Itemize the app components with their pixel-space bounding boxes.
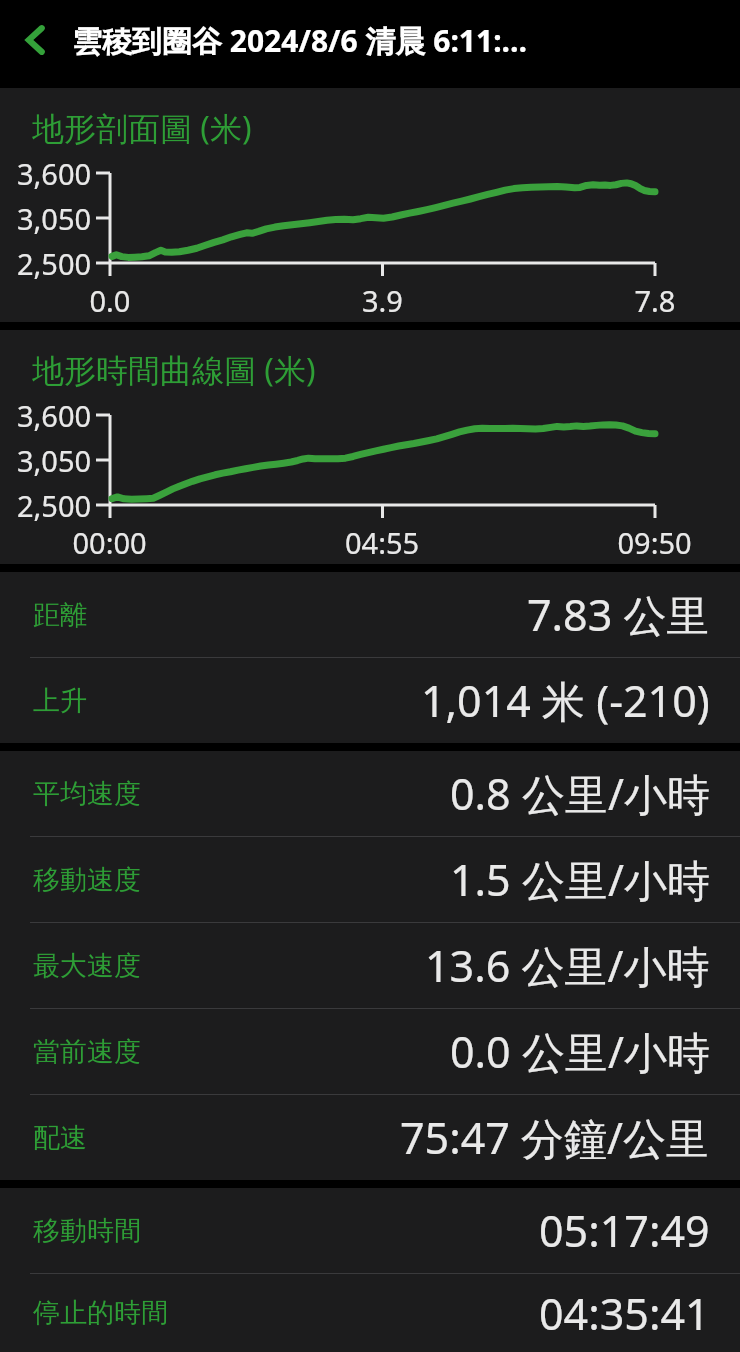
button[interactable]: 距離	[0, 572, 740, 657]
staticText: 0.0 公里/小時	[450, 1022, 710, 1081]
button[interactable]: 移動速度	[0, 837, 740, 922]
staticText: 1.5 公里/小時	[450, 850, 710, 909]
staticText: 平均速度	[33, 777, 141, 811]
staticText: 1,014 米 (-210)	[421, 671, 710, 730]
button[interactable]	[0, 88, 740, 322]
button[interactable]: 配速	[0, 1095, 740, 1180]
staticText: 配速	[33, 1121, 87, 1155]
button[interactable]: 最大速度	[0, 923, 740, 1008]
staticText: 上升	[33, 684, 87, 718]
staticText: 04:35:41	[539, 1284, 710, 1343]
staticText: 0.8 公里/小時	[450, 764, 710, 823]
staticText: 7.83 公里	[527, 585, 710, 644]
button[interactable]: 移動時間	[0, 1188, 740, 1273]
staticText: 最大速度	[33, 949, 141, 983]
staticText: 移動速度	[33, 863, 141, 897]
staticText: 停止的時間	[33, 1296, 168, 1330]
button[interactable]	[0, 330, 740, 564]
staticText: 當前速度	[33, 1035, 141, 1069]
button[interactable]: 停止的時間	[0, 1274, 740, 1352]
button[interactable]: 返回	[0, 0, 72, 80]
button[interactable]: 上升	[0, 658, 740, 743]
staticText: 移動時間	[33, 1214, 141, 1248]
staticText: 13.6 公里/小時	[425, 936, 710, 995]
staticText: 距離	[33, 598, 87, 632]
button[interactable]: 當前速度	[0, 1009, 740, 1094]
staticText: 05:17:49	[539, 1201, 710, 1260]
button[interactable]: 平均速度	[0, 751, 740, 836]
staticText: 75:47 分鐘/公里	[400, 1108, 710, 1167]
staticText: 雲稜到圈谷 2024/8/6 清晨 6:11:…	[72, 20, 528, 61]
